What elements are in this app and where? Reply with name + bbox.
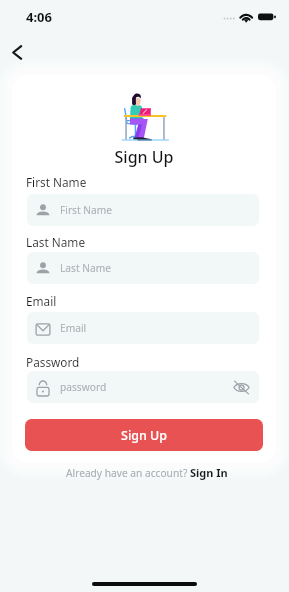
staticText: Password: [26, 354, 80, 370]
button[interactable]: First Name: [27, 194, 259, 226]
button[interactable]: Sign Up: [25, 419, 263, 451]
staticText: Last Name: [26, 234, 86, 250]
staticText: Sign In: [190, 465, 228, 480]
staticText: Already have an account?: [66, 466, 190, 480]
staticText: Sign Up: [12, 146, 276, 168]
staticText: 4:06: [26, 8, 52, 26]
staticText: Email: [60, 321, 87, 335]
staticText: First Name: [26, 174, 87, 190]
staticText: First Name: [60, 203, 113, 217]
staticText: password: [60, 380, 107, 394]
button[interactable]: Back: [4, 39, 30, 65]
staticText: Sign Up: [121, 427, 168, 444]
staticText: Last Name: [60, 261, 111, 275]
button[interactable]: Show password: [232, 377, 250, 397]
button[interactable]: Last Name: [27, 252, 259, 284]
button[interactable]: password: [27, 371, 259, 403]
staticText: Email: [26, 293, 57, 309]
button[interactable]: Email: [27, 312, 259, 344]
button[interactable]: Already have an account?: [2, 465, 289, 480]
